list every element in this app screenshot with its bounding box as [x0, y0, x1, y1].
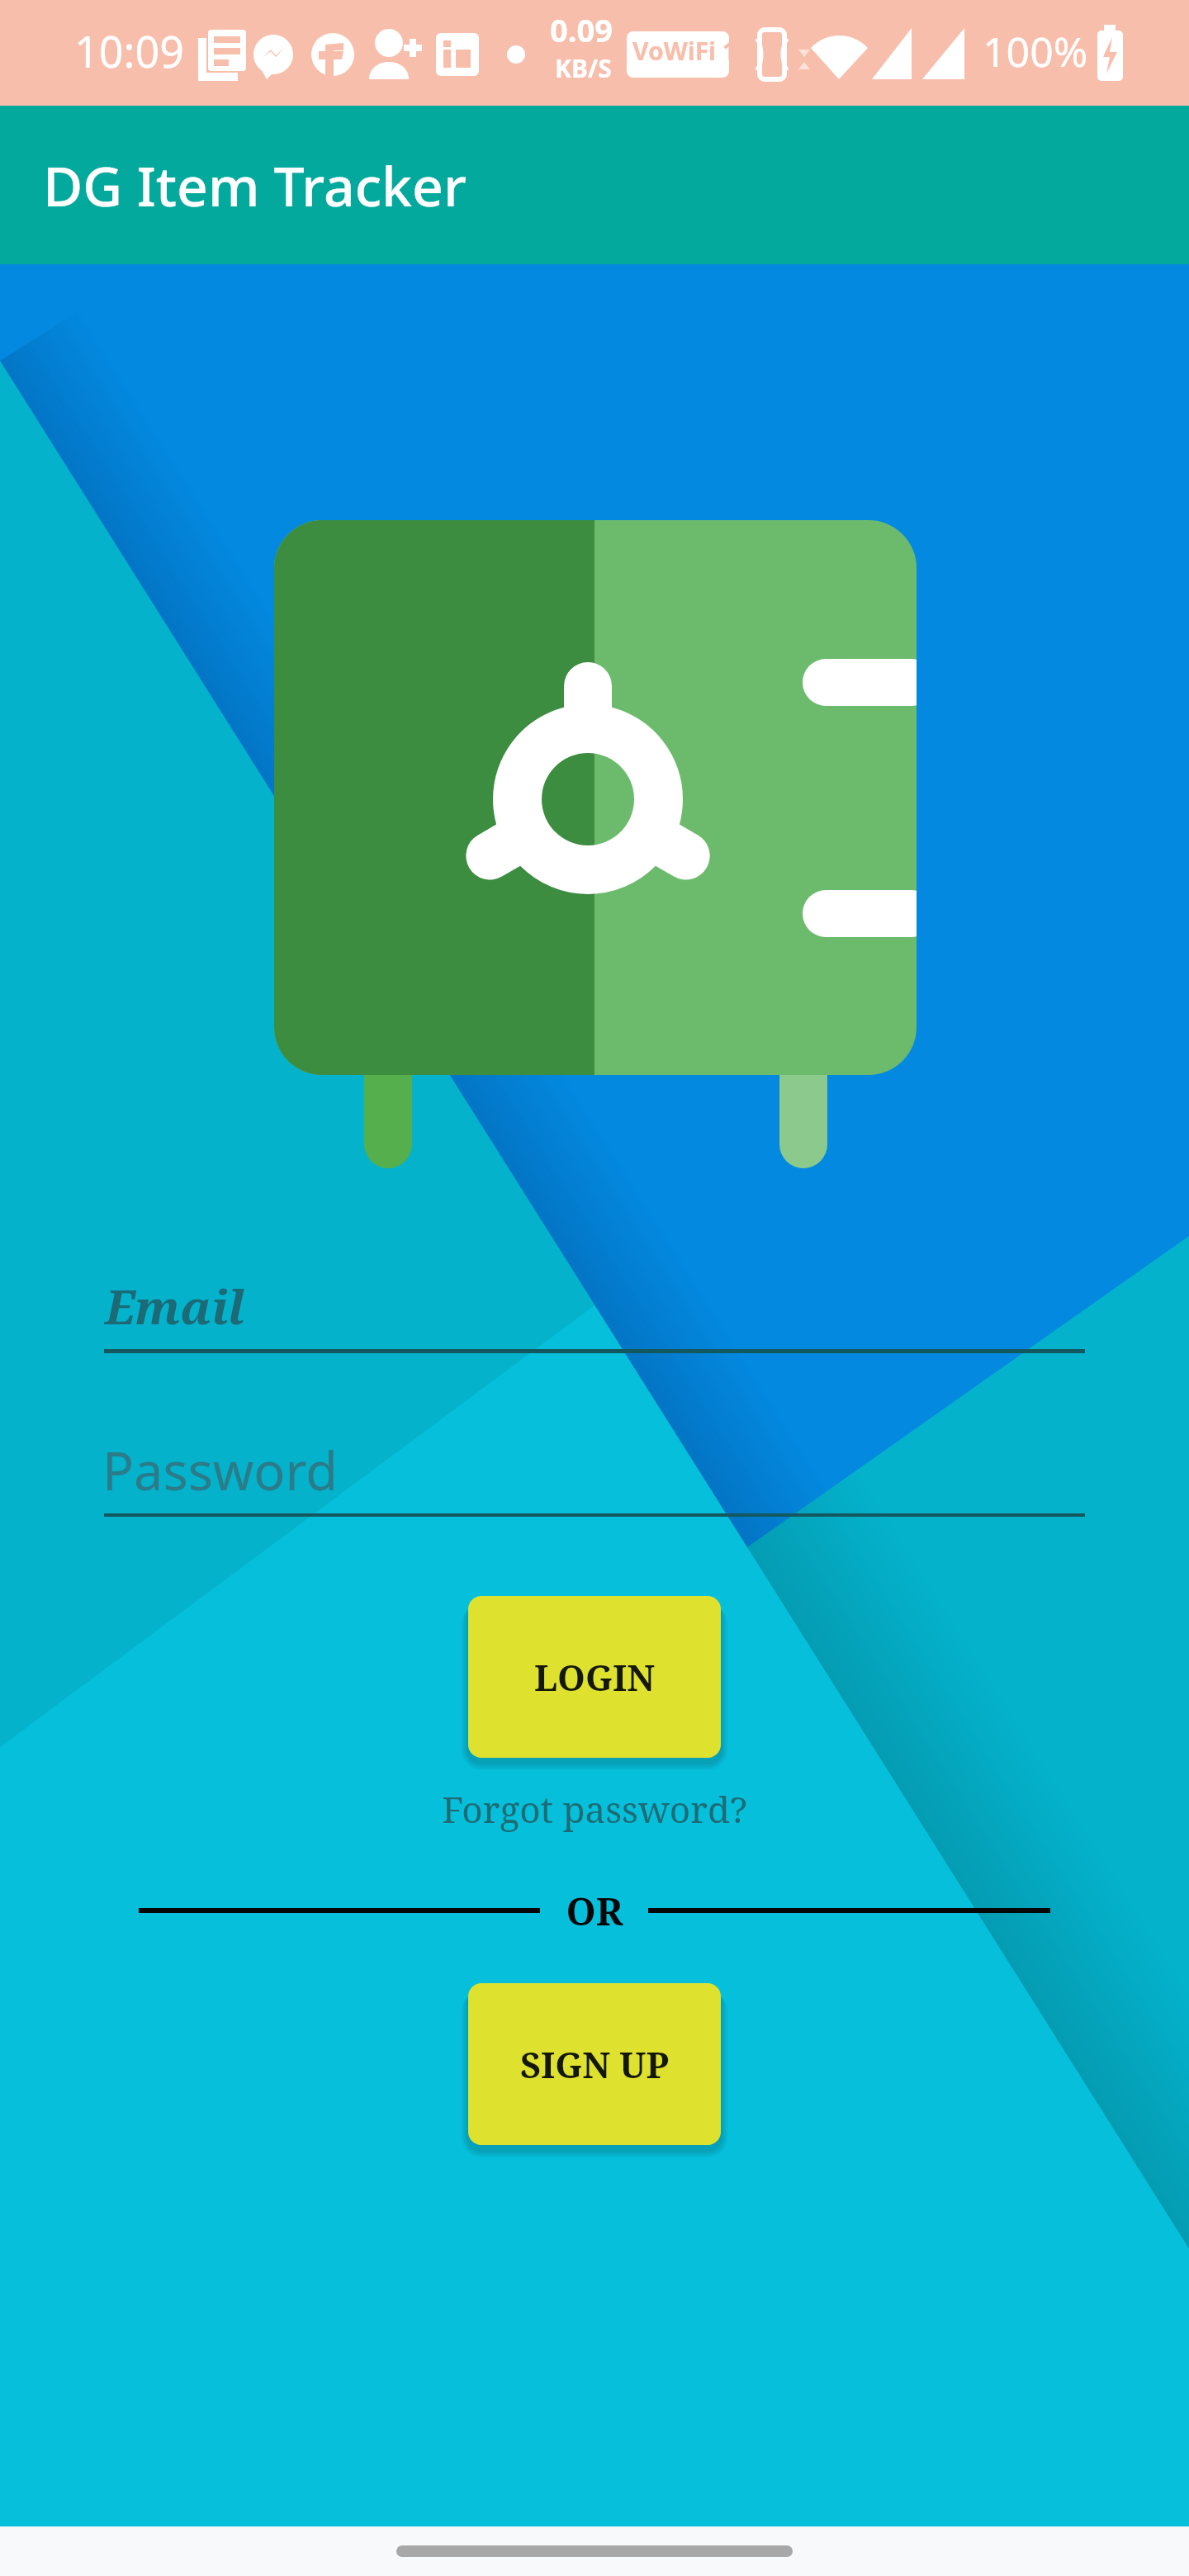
staticText: DG Item Tracker — [43, 148, 467, 222]
staticText: SIGN UP — [520, 2040, 669, 2089]
button[interactable]: Email input field — [104, 1238, 1085, 1354]
staticText: Password — [102, 1435, 338, 1506]
button[interactable]: SIGN UP — [468, 1983, 721, 2145]
staticText: LOGIN — [534, 1653, 656, 1702]
button[interactable]: LOGIN — [468, 1596, 721, 1758]
staticText: OR — [0, 1885, 1189, 1937]
staticText: VoWiFi 1 — [632, 34, 737, 68]
button[interactable]: Home — [396, 2545, 793, 2557]
button[interactable]: Forgot password? — [396, 1764, 793, 1854]
staticText: R — [946, 50, 965, 88]
staticText: Forgot password? — [442, 1784, 747, 1834]
staticText: Email — [105, 1274, 245, 1338]
staticText: KB/S — [555, 51, 612, 85]
button[interactable]: Password input field — [104, 1404, 1085, 1518]
staticText: 0.09 — [550, 8, 613, 51]
staticText: 100% — [983, 23, 1088, 79]
staticText: 10:09 — [74, 21, 184, 80]
